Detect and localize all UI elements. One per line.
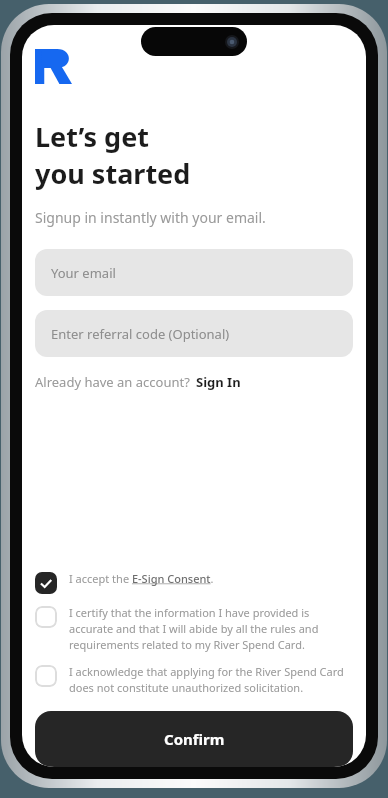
staticText: I certify that the information I have pr… <box>69 605 350 652</box>
staticText: I accept the E-Sign Consent. <box>69 571 214 586</box>
button[interactable]: Consent checkbox <box>35 571 350 593</box>
staticText: Let’s get <box>35 118 149 155</box>
button[interactable]: Consent checkbox <box>35 605 350 652</box>
staticText: Sign In <box>196 373 241 391</box>
staticText: I acknowledge that applying for the Rive… <box>69 664 350 695</box>
staticText: you started <box>35 155 191 192</box>
staticText: Signup in instantly with your email. <box>35 208 266 227</box>
button[interactable]: Your email <box>35 249 353 296</box>
staticText: Confirm <box>164 729 225 749</box>
staticText: Your email <box>51 264 116 282</box>
staticText: Already have an account? <box>35 373 190 391</box>
other: Consent checkbox <box>35 572 57 594</box>
other: Consent checkbox <box>35 665 57 687</box>
button[interactable]: Confirm <box>35 711 353 767</box>
button[interactable]: Enter referral code (Optional) <box>35 310 353 357</box>
staticText: Enter referral code (Optional) <box>51 325 230 343</box>
other: Consent checkbox <box>35 606 57 628</box>
button[interactable]: Consent checkbox <box>35 664 350 695</box>
button[interactable]: Already have an account? <box>35 373 241 391</box>
